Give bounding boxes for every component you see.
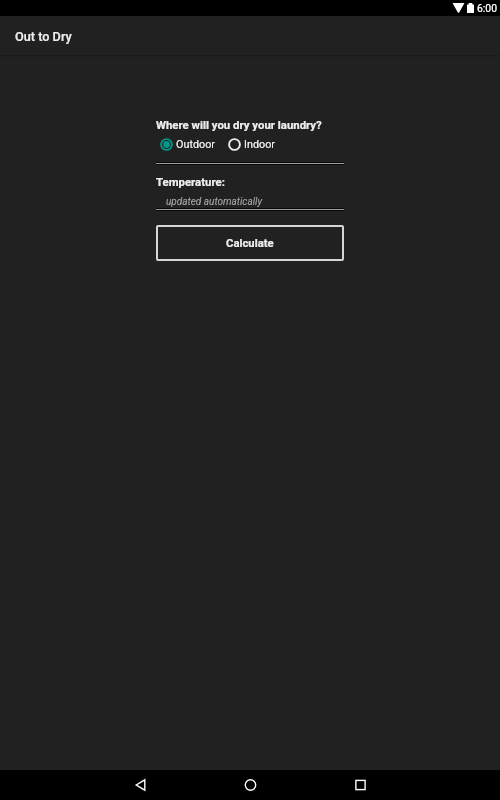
button[interactable]: Recent apps xyxy=(305,770,415,800)
button[interactable]: Indoor xyxy=(226,136,275,153)
staticText: Temperature: xyxy=(156,175,225,188)
staticText: Calculate xyxy=(226,237,274,250)
button[interactable]: Home xyxy=(195,770,305,800)
staticText: 6:00 xyxy=(477,2,498,14)
staticText: Indoor xyxy=(244,138,275,151)
staticText: Out to Dry xyxy=(15,29,72,44)
button[interactable]: Calculate xyxy=(156,225,344,261)
button[interactable]: Outdoor xyxy=(156,136,215,153)
staticText: Where will you dry your laundry? xyxy=(156,118,322,131)
staticText: Outdoor xyxy=(176,138,215,151)
staticText: updated automatically xyxy=(166,196,262,208)
button[interactable]: Back xyxy=(85,770,195,800)
